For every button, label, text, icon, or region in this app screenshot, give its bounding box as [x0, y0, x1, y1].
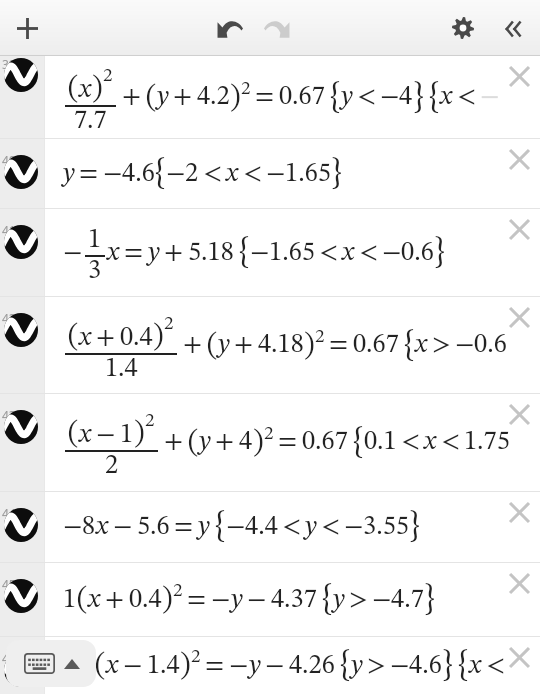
staticText: < — [243, 161, 262, 188]
staticText: ( — [95, 651, 106, 681]
button[interactable]: Expression 39 visibility — [0, 56, 44, 138]
button[interactable]: 1 — [45, 563, 540, 636]
button[interactable]: − — [45, 209, 540, 296]
staticText: = — [174, 514, 194, 541]
staticText: x — [226, 161, 239, 188]
staticText: 2 — [103, 66, 113, 85]
staticText: − — [265, 653, 285, 680]
staticText: 3 — [88, 258, 102, 285]
staticText: −4.7 — [372, 587, 424, 614]
staticText: 45 — [2, 576, 16, 592]
staticText: 2 — [105, 453, 119, 480]
staticText: 4.18 — [258, 332, 304, 359]
staticText: < — [321, 514, 340, 541]
button[interactable]: Expression 46 visibility — [0, 637, 44, 694]
staticText: + — [105, 587, 125, 614]
staticText: ( — [146, 83, 157, 113]
staticText: + — [183, 332, 203, 359]
staticText: x — [79, 77, 92, 104]
button[interactable]: Add expression — [0, 1, 55, 56]
staticText: } — [331, 157, 342, 191]
staticText: > — [349, 587, 368, 614]
staticText: 1.4 — [147, 653, 180, 680]
staticText: −0.6 — [455, 332, 507, 359]
button[interactable]: Delete expression 43 — [500, 395, 538, 433]
staticText: } — [434, 236, 445, 270]
staticText: { — [215, 510, 226, 544]
button[interactable]: Undo — [204, 3, 255, 54]
staticText: x — [96, 514, 109, 541]
staticText: 2 — [241, 79, 251, 98]
staticText: x — [415, 332, 428, 359]
staticText: = — [278, 429, 298, 456]
staticText: y — [249, 653, 261, 680]
button[interactable]: ( — [45, 637, 540, 694]
staticText: y — [198, 514, 210, 541]
staticText: 0.4 — [129, 587, 162, 614]
staticText: 46 — [2, 650, 16, 666]
button[interactable]: Delete expression 46 — [500, 638, 538, 676]
staticText: x — [424, 429, 437, 456]
staticText: −0.6 — [382, 240, 434, 267]
button[interactable]: Delete expression 42 — [500, 298, 538, 336]
staticText: y — [305, 514, 317, 541]
button[interactable]: ( — [45, 297, 540, 393]
staticText: x — [469, 653, 482, 680]
staticText: − — [247, 587, 267, 614]
staticText: ( — [68, 74, 79, 104]
staticText: −4 — [380, 84, 413, 111]
staticText: < — [357, 84, 376, 111]
staticText: { — [458, 649, 469, 683]
staticText: x — [88, 587, 101, 614]
staticText: 1 — [88, 227, 102, 254]
button[interactable]: −8 — [45, 492, 540, 562]
staticText: } — [409, 510, 420, 544]
staticText: 2 — [173, 581, 183, 600]
staticText: } — [424, 583, 435, 617]
staticText: < — [441, 429, 460, 456]
button[interactable]: Delete expression 39 — [500, 57, 538, 95]
staticText: − — [480, 84, 500, 111]
button[interactable]: Expression 43 visibility — [0, 394, 44, 491]
staticText: ( — [68, 419, 79, 449]
button[interactable]: y — [45, 139, 540, 208]
button[interactable]: Expression 40 visibility — [0, 139, 44, 208]
staticText: 2 — [164, 314, 174, 333]
button[interactable]: Expression 41 visibility — [0, 209, 44, 296]
staticText: y — [231, 587, 243, 614]
staticText: 7.7 — [74, 108, 107, 135]
staticText: < — [401, 429, 420, 456]
button[interactable]: Delete expression 45 — [500, 564, 538, 602]
staticText: 0.67 — [279, 84, 325, 111]
staticText: − — [63, 240, 83, 267]
staticText: ( — [188, 428, 199, 458]
staticText: < — [203, 161, 222, 188]
button[interactable]: Settings — [437, 2, 489, 54]
staticText: −1.65 — [250, 240, 315, 267]
button[interactable]: Delete expression 40 — [500, 140, 538, 178]
staticText: y — [157, 84, 169, 111]
staticText: = — [79, 161, 99, 188]
button[interactable]: Delete expression 41 — [500, 210, 538, 248]
staticText: < — [282, 514, 301, 541]
button[interactable]: ( — [45, 394, 540, 491]
button[interactable]: Show keyboard — [6, 640, 96, 687]
button[interactable]: Expression 42 visibility — [0, 297, 44, 393]
button[interactable]: Expression 45 visibility — [0, 563, 44, 636]
staticText: = — [205, 653, 225, 680]
staticText: ( — [77, 585, 88, 615]
staticText: > — [432, 332, 451, 359]
button[interactable]: Delete expression 44 — [500, 493, 538, 531]
staticText: − — [211, 587, 231, 614]
staticText: y — [63, 161, 75, 188]
staticText: 5.18 — [188, 240, 234, 267]
staticText: { — [155, 157, 166, 191]
staticText: + — [96, 325, 116, 352]
button[interactable]: Collapse panel — [489, 4, 538, 53]
staticText: = — [187, 587, 207, 614]
button[interactable]: ( — [45, 56, 540, 138]
staticText: ) — [304, 331, 315, 361]
staticText: ) — [230, 83, 241, 113]
button[interactable]: Redo — [255, 7, 298, 50]
button[interactable]: Expression 44 visibility — [0, 492, 44, 562]
